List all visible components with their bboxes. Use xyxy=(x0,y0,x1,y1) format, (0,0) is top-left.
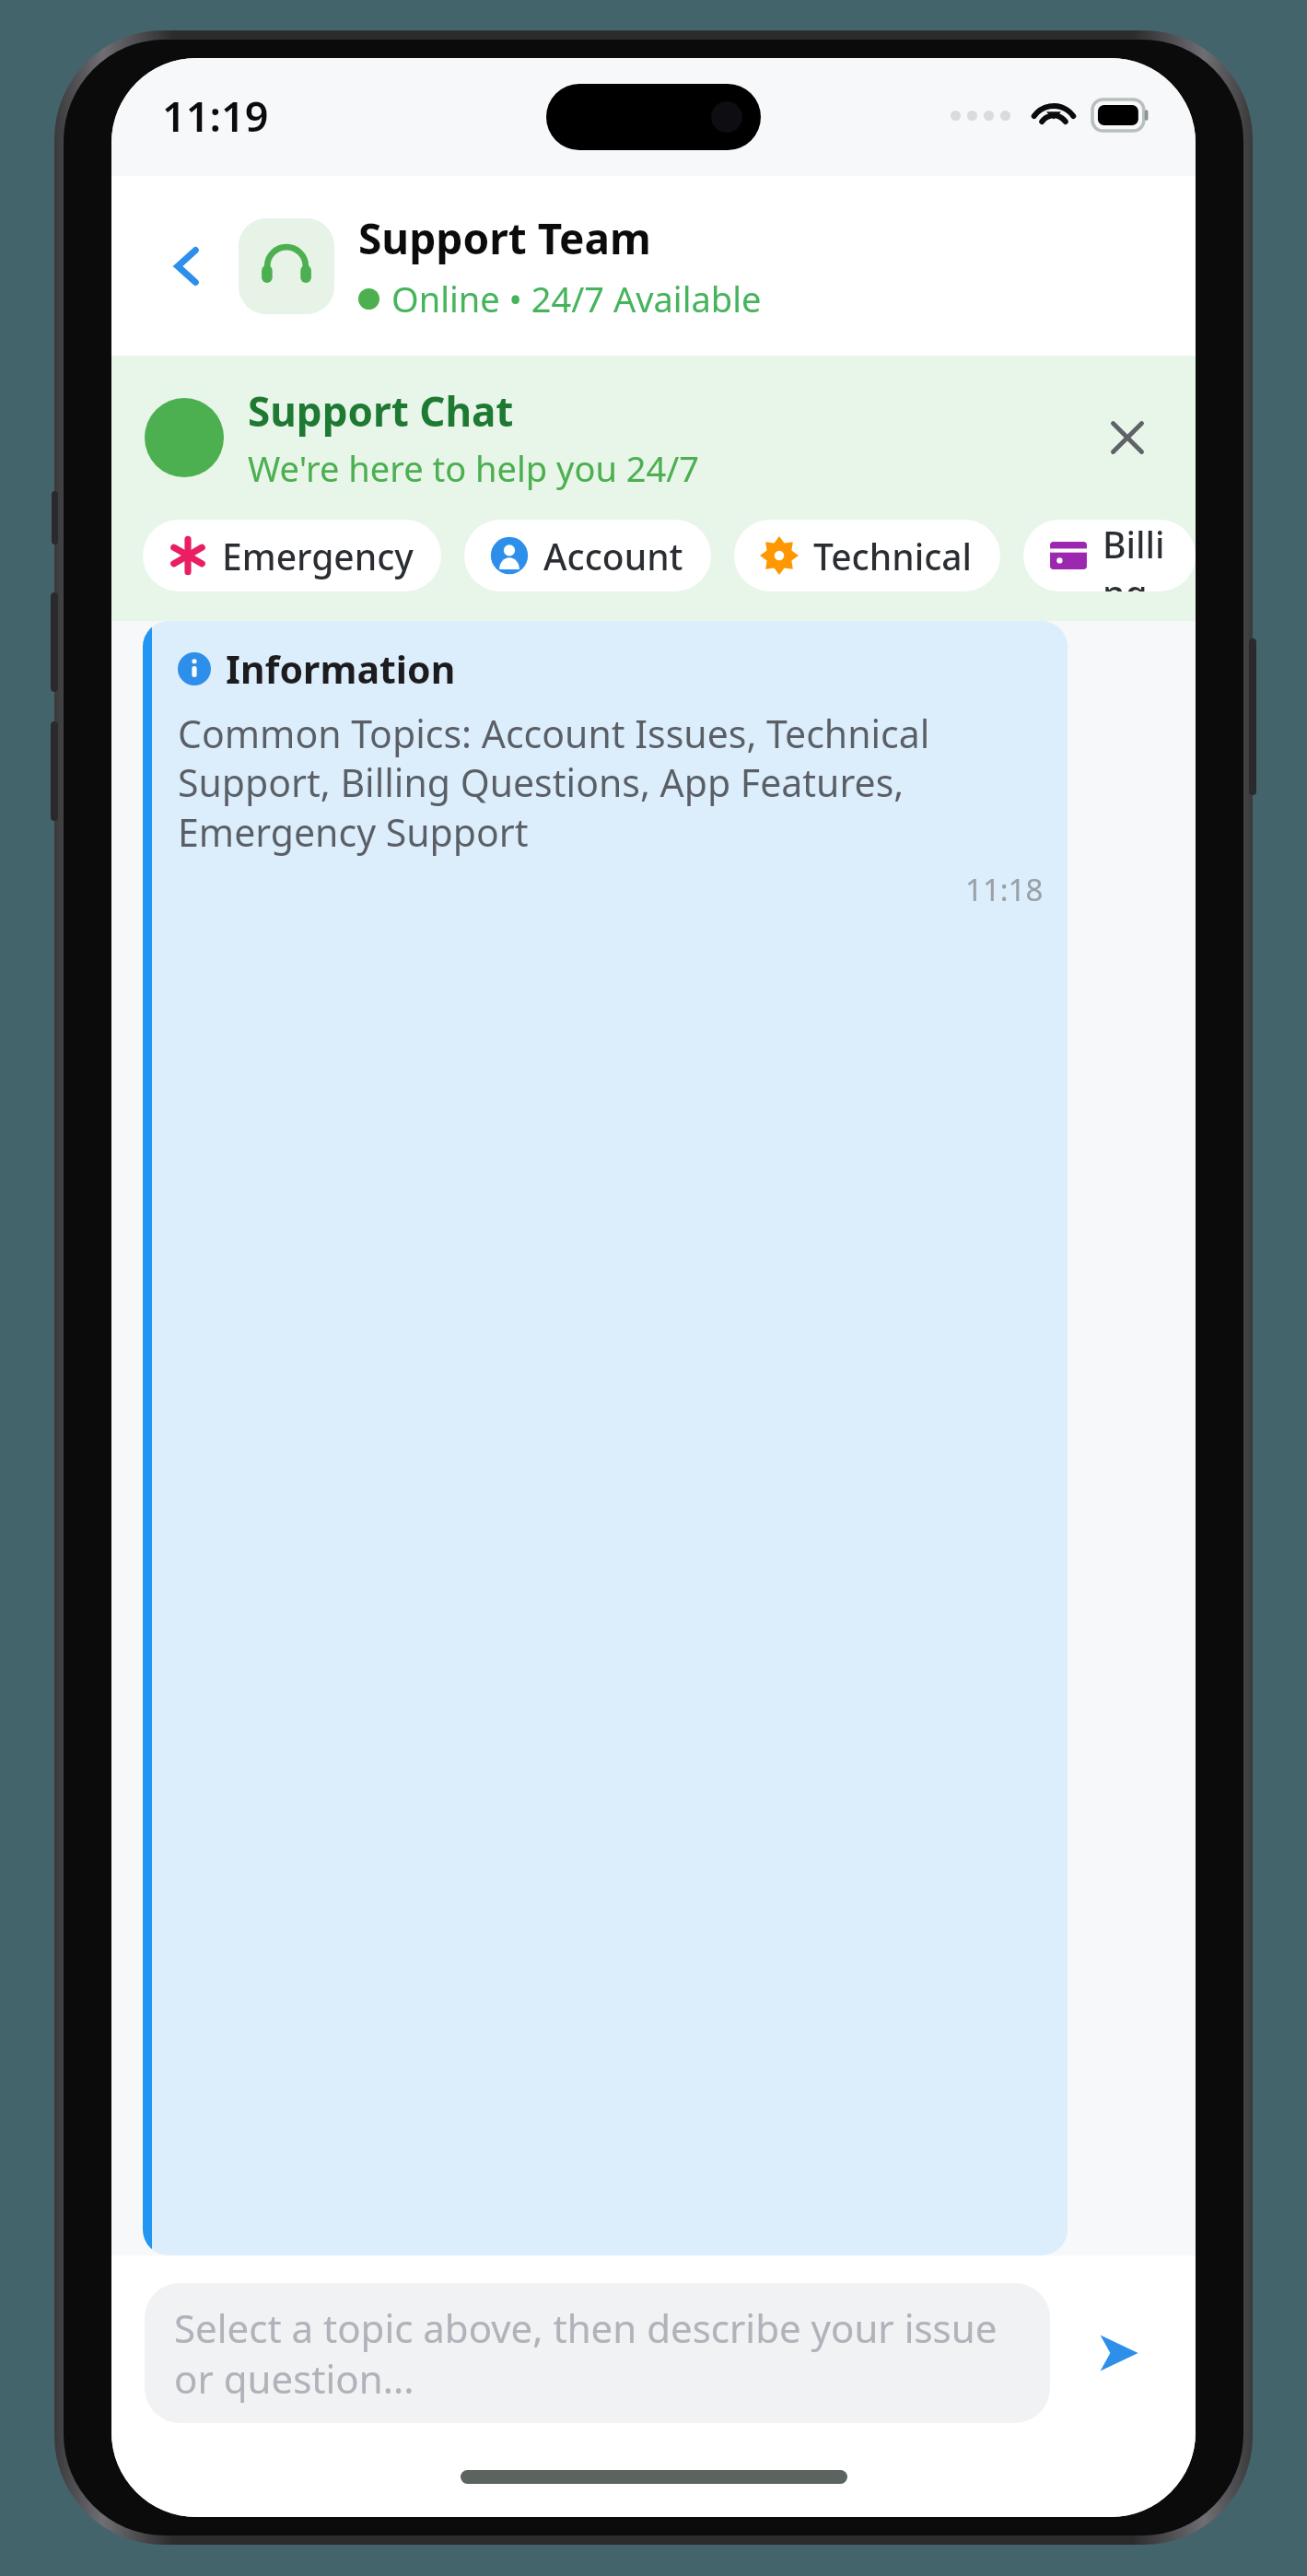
button[interactable]: Information xyxy=(143,621,1068,2255)
staticText: 11:19 xyxy=(162,88,269,144)
staticText: We're here to help you 24/7 xyxy=(248,444,700,492)
staticText: Information xyxy=(226,643,456,695)
staticText: Account xyxy=(543,532,683,580)
button[interactable]: Close xyxy=(1092,403,1162,473)
staticText: 11:18 xyxy=(965,869,1044,910)
button[interactable]: Billing xyxy=(1023,520,1196,591)
staticText: Support Chat xyxy=(248,383,514,439)
button[interactable]: Select a topic above, then describe your… xyxy=(145,2283,1050,2423)
button[interactable]: Emergency xyxy=(143,520,441,591)
staticText: Billing xyxy=(1103,520,1168,591)
staticText: Select a topic above, then describe your… xyxy=(174,2301,1024,2405)
button[interactable]: Send xyxy=(1074,2309,1162,2397)
staticText: Common Topics: Account Issues, Technical… xyxy=(178,708,1044,858)
button[interactable]: Technical xyxy=(734,520,1000,591)
staticText: Emergency xyxy=(222,532,414,580)
staticText: Support Team xyxy=(358,209,651,267)
staticText: Online • 24/7 Available xyxy=(391,275,762,322)
button[interactable]: Back xyxy=(148,227,228,306)
button[interactable]: Account xyxy=(464,520,711,591)
staticText: Technical xyxy=(813,532,973,580)
